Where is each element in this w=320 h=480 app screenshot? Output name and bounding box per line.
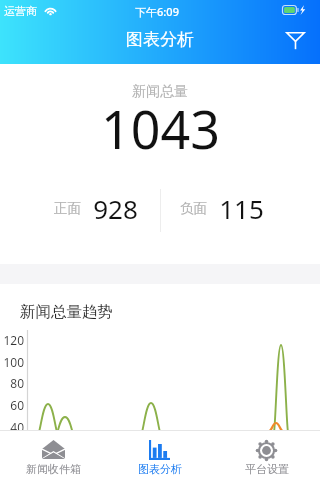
- staticText: 下午6:09: [135, 4, 179, 19]
- staticText: 100: [3, 354, 24, 370]
- staticText: 115: [219, 191, 264, 226]
- staticText: 图表分析: [138, 462, 182, 476]
- button[interactable]: 新闻收件箱: [0, 431, 106, 480]
- staticText: 图表分析: [126, 29, 194, 50]
- staticText: 新闻总量趋势: [20, 302, 113, 322]
- staticText: 80: [10, 375, 24, 391]
- staticText: 平台设置: [245, 462, 289, 476]
- staticText: 1043: [101, 93, 220, 164]
- staticText: 正面: [54, 200, 81, 217]
- staticText: 负面: [180, 200, 207, 217]
- staticText: 新闻收件箱: [26, 462, 81, 476]
- staticText: 120: [3, 332, 24, 348]
- button[interactable]: Filter: [278, 24, 312, 58]
- button[interactable]: 平台设置: [213, 431, 320, 480]
- staticText: 928: [93, 191, 138, 226]
- staticText: 新闻总量: [132, 83, 188, 101]
- staticText: 40: [10, 419, 24, 435]
- staticText: 运营商: [4, 4, 37, 18]
- button[interactable]: 图表分析: [106, 431, 213, 480]
- staticText: 60: [10, 397, 24, 413]
